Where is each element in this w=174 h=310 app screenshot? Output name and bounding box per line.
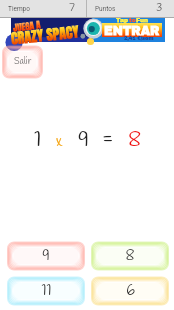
staticText: 11 [41, 281, 52, 301]
staticText: JUEGA A [12, 17, 42, 35]
staticText: Tiempo [8, 5, 30, 13]
staticText: 1 [34, 125, 42, 154]
staticText: Fun [136, 17, 149, 24]
button[interactable]: 11 [8, 276, 84, 306]
staticText: 2,41 €/sem [124, 36, 154, 41]
staticText: Salir [14, 56, 32, 68]
staticText: 9 [42, 246, 50, 266]
staticText: 3 [156, 0, 163, 16]
button[interactable]: Advertisement [11, 18, 165, 42]
staticText: Puntos [95, 5, 116, 13]
button[interactable]: 8 [92, 241, 168, 271]
staticText: 9 [78, 125, 90, 154]
staticText: to [129, 17, 136, 24]
button[interactable]: Salir [3, 45, 42, 79]
button[interactable]: 6 [92, 276, 168, 306]
staticText: CRAZY SPACY [10, 21, 80, 49]
staticText: 8 [125, 246, 135, 266]
button[interactable]: ENTRAR [102, 23, 162, 37]
staticText: 7 [69, 0, 75, 16]
staticText: x [56, 132, 62, 152]
staticText: 8 [128, 125, 142, 154]
staticText: = [102, 127, 114, 152]
staticText: 6 [126, 281, 135, 301]
button[interactable]: 9 [8, 241, 84, 271]
staticText: ENTRAR [104, 24, 160, 37]
staticText: Tap [116, 17, 129, 24]
